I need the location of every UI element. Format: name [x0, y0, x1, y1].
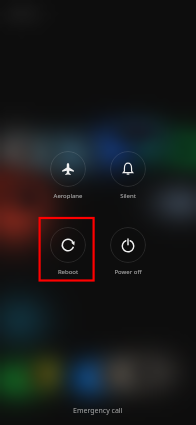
button[interactable]: Emergency call	[0, 389, 196, 425]
staticText: Emergency call	[73, 406, 123, 416]
button[interactable]: Power off	[100, 227, 156, 276]
staticText: Silent	[100, 192, 156, 200]
button[interactable]: Silent	[100, 151, 156, 200]
button[interactable]: Aeroplane	[40, 151, 96, 200]
staticText: Reboot	[40, 268, 96, 276]
staticText: Aeroplane	[40, 192, 96, 200]
staticText: Power off	[100, 268, 156, 276]
button[interactable]: Reboot	[40, 227, 96, 276]
